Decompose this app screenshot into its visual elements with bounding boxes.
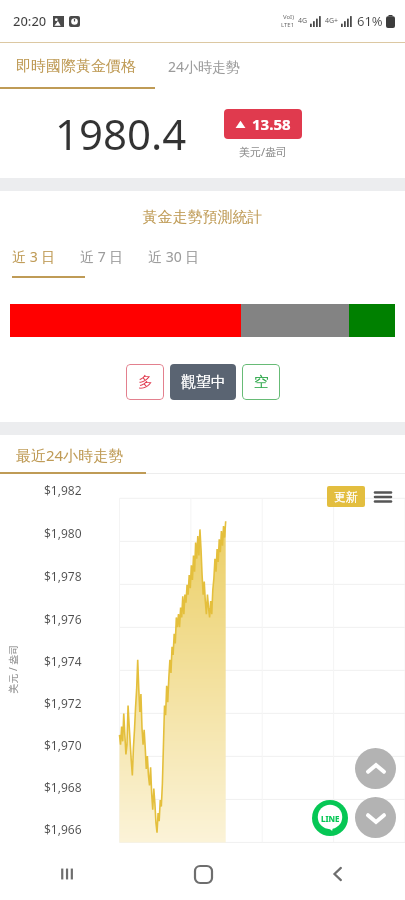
staticText: 近 7 日 xyxy=(80,247,124,266)
staticText: 空 xyxy=(254,373,269,392)
staticText: $1,972 xyxy=(44,695,82,711)
button[interactable]: Scroll down xyxy=(355,797,396,838)
staticText: 61% xyxy=(357,12,383,30)
staticText: 4G+ xyxy=(325,16,339,26)
button[interactable]: 觀望中 xyxy=(170,364,236,400)
staticText: 近 3 日 xyxy=(12,247,56,266)
staticText: 多 xyxy=(138,373,153,392)
button[interactable]: Recents xyxy=(40,848,96,900)
staticText: 24小時走勢 xyxy=(168,57,241,76)
staticText: $1,974 xyxy=(44,653,82,669)
staticText: 觀望中 xyxy=(181,373,226,392)
button[interactable]: 多 xyxy=(126,364,164,400)
button[interactable]: 24小時走勢 xyxy=(152,43,257,89)
staticText: $1,976 xyxy=(44,611,82,627)
staticText: $1,982 xyxy=(44,482,82,498)
button[interactable]: Menu xyxy=(373,487,393,507)
button[interactable]: 近 7 日 xyxy=(68,241,136,278)
staticText: VoI) xyxy=(283,13,294,21)
button[interactable]: Home xyxy=(175,848,231,900)
button[interactable]: 近 30 日 xyxy=(136,241,212,278)
staticText: 黃金走勢預測統計 xyxy=(0,208,405,227)
staticText: 美元/盎司 xyxy=(239,144,288,159)
staticText: 20:20 xyxy=(13,12,47,30)
staticText: 1980.4 xyxy=(55,105,187,162)
staticText: $1,968 xyxy=(44,779,82,795)
staticText: 即時國際黃金價格 xyxy=(16,57,136,76)
button[interactable]: 空 xyxy=(242,364,280,400)
staticText: $1,970 xyxy=(44,737,82,753)
staticText: $1,978 xyxy=(44,568,82,584)
button[interactable]: 13.58 xyxy=(224,109,302,139)
staticText: 13.58 xyxy=(252,114,291,134)
staticText: 美元 / 盎司 xyxy=(5,644,19,693)
staticText: 更新 xyxy=(334,489,358,504)
button[interactable]: 即時國際黃金價格 xyxy=(0,43,152,89)
staticText: 4G xyxy=(298,16,308,26)
staticText: $1,966 xyxy=(44,821,82,837)
staticText: 近 30 日 xyxy=(148,247,200,266)
button[interactable]: LINE xyxy=(312,800,348,836)
staticText: LINE xyxy=(321,813,340,824)
button[interactable]: Scroll up xyxy=(355,748,396,789)
button[interactable]: 更新 xyxy=(327,486,365,507)
staticText: 最近24小時走勢 xyxy=(16,445,124,465)
staticText: $1,980 xyxy=(44,525,82,541)
button[interactable]: Back xyxy=(310,848,366,900)
button[interactable]: 近 3 日 xyxy=(0,241,68,278)
staticText: LTE1 xyxy=(281,21,295,29)
